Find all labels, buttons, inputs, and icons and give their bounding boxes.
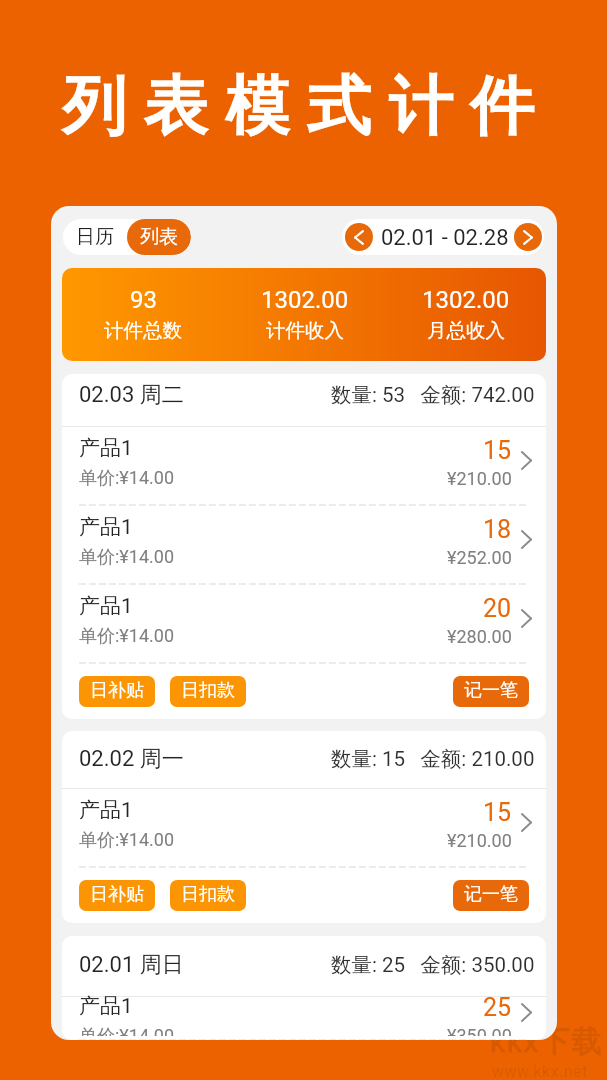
button[interactable]: 日补贴 bbox=[79, 676, 155, 707]
button[interactable]: 日补贴 bbox=[79, 880, 155, 911]
staticText: 25 bbox=[483, 993, 512, 1022]
staticText: 产品1 bbox=[79, 797, 133, 823]
staticText: 02.02 周一 bbox=[79, 745, 184, 773]
staticText: 数量: 53 金额: 742.00 bbox=[331, 382, 535, 408]
staticText: 1302.00 bbox=[261, 286, 349, 314]
button[interactable]: Previous date range bbox=[345, 223, 373, 251]
staticText: www.kkx.net bbox=[492, 1062, 588, 1080]
staticText: 93 bbox=[130, 286, 157, 314]
staticText: 单价:¥14.00 bbox=[79, 546, 175, 569]
button[interactable]: 产品1 bbox=[79, 585, 534, 663]
staticText: 产品1 bbox=[79, 435, 133, 461]
button[interactable]: 记一笔 bbox=[453, 676, 529, 707]
staticText: 产品1 bbox=[79, 514, 133, 540]
staticText: 计件总数 bbox=[104, 318, 182, 343]
staticText: 数量: 25 金额: 350.00 bbox=[331, 952, 535, 978]
staticText: ¥350.00 bbox=[447, 1025, 512, 1036]
button[interactable]: 日扣款 bbox=[170, 676, 246, 707]
staticText: ¥210.00 bbox=[447, 830, 512, 851]
button[interactable]: 产品1 bbox=[79, 427, 534, 505]
button[interactable]: 产品1 bbox=[79, 789, 534, 867]
staticText: 数量: 15 金额: 210.00 bbox=[331, 746, 535, 772]
staticText: 02.01 - 02.28 bbox=[381, 225, 509, 251]
staticText: ¥252.00 bbox=[447, 547, 512, 568]
staticText: 列表模式计件 bbox=[62, 66, 552, 147]
staticText: 单价:¥14.00 bbox=[79, 625, 175, 648]
staticText: 日补贴 bbox=[90, 679, 144, 702]
staticText: kkx下载 bbox=[490, 1023, 603, 1061]
staticText: 单价:¥14.00 bbox=[79, 1025, 175, 1036]
staticText: 日补贴 bbox=[90, 883, 144, 906]
staticText: 记一笔 bbox=[464, 883, 518, 906]
button[interactable]: 日扣款 bbox=[170, 880, 246, 911]
staticText: 02.01 周日 bbox=[79, 951, 184, 979]
button[interactable]: 列表 bbox=[127, 219, 191, 255]
staticText: 02.03 周二 bbox=[79, 381, 184, 409]
staticText: 产品1 bbox=[79, 593, 133, 619]
button[interactable]: Next date range bbox=[514, 223, 542, 251]
staticText: 日历 bbox=[76, 225, 114, 249]
staticText: 月总收入 bbox=[427, 318, 505, 343]
button[interactable]: 产品1 bbox=[79, 997, 534, 1040]
staticText: 1302.00 bbox=[422, 286, 510, 314]
staticText: 日扣款 bbox=[181, 679, 235, 702]
staticText: 单价:¥14.00 bbox=[79, 467, 175, 490]
button[interactable]: 日历 bbox=[63, 219, 127, 255]
staticText: 计件收入 bbox=[266, 318, 344, 343]
staticText: 列表 bbox=[140, 225, 178, 249]
staticText: 记一笔 bbox=[464, 679, 518, 702]
staticText: 15 bbox=[483, 798, 512, 827]
staticText: 15 bbox=[483, 436, 512, 465]
staticText: ¥210.00 bbox=[447, 468, 512, 489]
staticText: 日扣款 bbox=[181, 883, 235, 906]
staticText: 单价:¥14.00 bbox=[79, 829, 175, 852]
staticText: 18 bbox=[483, 515, 512, 544]
staticText: 20 bbox=[483, 594, 512, 623]
button[interactable]: 记一笔 bbox=[453, 880, 529, 911]
button[interactable]: 产品1 bbox=[79, 506, 534, 584]
staticText: 产品1 bbox=[79, 993, 133, 1019]
staticText: ¥280.00 bbox=[447, 626, 512, 647]
